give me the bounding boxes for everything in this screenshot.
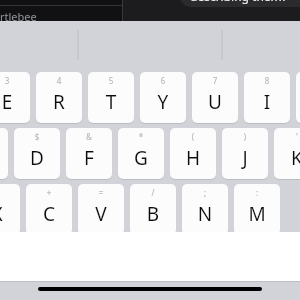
button[interactable]: 6: [140, 72, 186, 123]
button[interactable]: 5: [88, 72, 134, 123]
button[interactable]: 8: [244, 72, 290, 123]
staticText: 7: [192, 75, 238, 86]
staticText: =: [78, 187, 124, 198]
staticText: 4: [36, 75, 82, 86]
staticText: rtlebee: [0, 9, 37, 24]
button[interactable]: :: [234, 184, 280, 235]
button[interactable]: -: [0, 184, 20, 235]
staticText: ': [274, 131, 300, 142]
button[interactable]: rtlebee: [0, 0, 122, 21]
button[interactable]: ): [222, 128, 268, 179]
button[interactable]: +: [26, 184, 72, 235]
button[interactable]: (: [170, 128, 216, 179]
staticText: describing them?: [190, 0, 288, 4]
staticText: *: [118, 131, 164, 142]
staticText: R: [36, 89, 82, 115]
button[interactable]: ;: [182, 184, 228, 235]
button[interactable]: $: [14, 128, 60, 179]
button[interactable]: 4: [36, 72, 82, 123]
button[interactable]: ': [274, 128, 300, 179]
staticText: N: [182, 201, 228, 227]
staticText: Y: [140, 89, 186, 115]
staticText: M: [234, 201, 280, 227]
button[interactable]: Home indicator: [38, 287, 262, 291]
staticText: 5: [88, 75, 134, 86]
button[interactable]: #: [0, 128, 8, 179]
button[interactable]: &: [66, 128, 112, 179]
button[interactable]: *: [118, 128, 164, 179]
staticText: T: [88, 89, 134, 115]
button[interactable]: 3: [0, 72, 30, 123]
staticText: H: [170, 145, 216, 171]
staticText: +: [26, 187, 72, 198]
button[interactable]: /: [130, 184, 176, 235]
staticText: &: [66, 131, 112, 142]
staticText: 3: [0, 75, 30, 86]
staticText: G: [118, 145, 164, 171]
staticText: $: [14, 131, 60, 142]
staticText: J: [222, 145, 268, 171]
staticText: (: [170, 131, 216, 142]
staticText: 8: [244, 75, 290, 86]
staticText: /: [130, 187, 176, 198]
staticText: D: [14, 145, 60, 171]
staticText: B: [130, 201, 176, 227]
button[interactable]: =: [78, 184, 124, 235]
button[interactable]: 7: [192, 72, 238, 123]
staticText: F: [66, 145, 112, 171]
staticText: X: [0, 201, 20, 227]
staticText: C: [26, 201, 72, 227]
staticText: I: [244, 89, 290, 115]
staticText: 6: [140, 75, 186, 86]
button[interactable]: describing them?: [180, 0, 300, 7]
button[interactable]: 9: [296, 72, 300, 123]
staticText: ;: [182, 187, 228, 198]
staticText: E: [0, 89, 30, 115]
staticText: :: [234, 187, 280, 198]
staticText: V: [78, 201, 124, 227]
staticText: K: [274, 145, 300, 171]
staticText: ): [222, 131, 268, 142]
staticText: U: [192, 89, 238, 115]
